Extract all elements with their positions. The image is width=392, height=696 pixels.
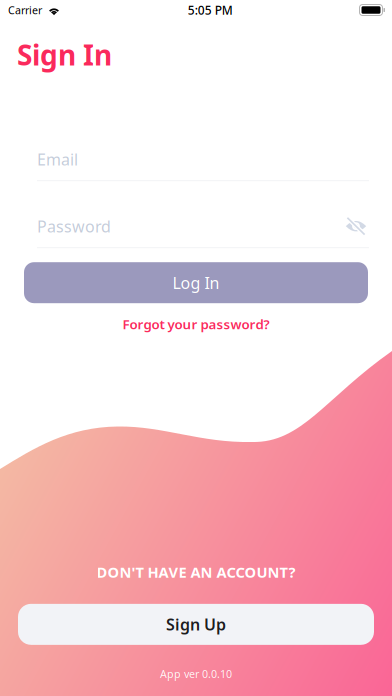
staticText: DON'T HAVE AN ACCOUNT? — [96, 562, 295, 582]
staticText: Password — [37, 216, 111, 237]
staticText: App ver 0.0.10 — [160, 667, 232, 681]
staticText: 5:05 PM — [188, 2, 233, 18]
staticText: Email — [37, 149, 78, 170]
staticText: Sign Up — [166, 614, 226, 635]
staticText: Sign In — [17, 36, 112, 73]
staticText: Carrier — [8, 3, 42, 17]
staticText: Log In — [172, 272, 219, 293]
button[interactable]: Log In — [24, 262, 368, 303]
button[interactable]: Sign Up — [18, 604, 374, 645]
staticText: Forgot your password? — [122, 315, 269, 333]
button[interactable]: Forgot your password? — [0, 316, 392, 332]
button[interactable]: Show password — [343, 215, 369, 237]
